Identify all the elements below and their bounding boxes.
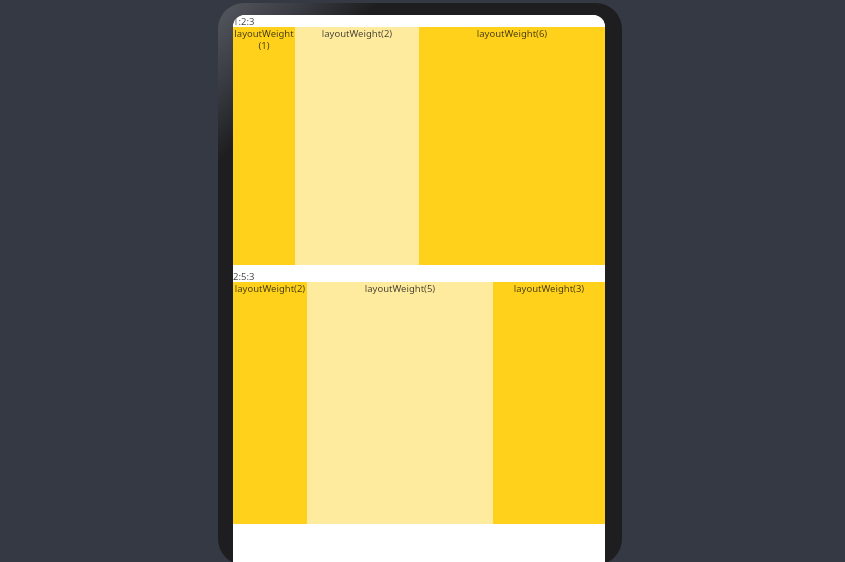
staticText: 1:2:3 — [233, 15, 255, 27]
staticText: layoutWeight(2) — [296, 27, 418, 40]
staticText: layoutWeight(6) — [420, 27, 604, 40]
button[interactable]: layoutWeight(5) — [307, 282, 493, 524]
staticText: layoutWeight(5) — [308, 282, 492, 295]
button[interactable]: layoutWeight(6) — [419, 27, 605, 265]
button[interactable]: layoutWeight(3) — [493, 282, 605, 524]
staticText: layoutWeight(1) — [234, 27, 294, 52]
button[interactable]: layoutWeight(2) — [295, 27, 419, 265]
staticText: layoutWeight(3) — [494, 282, 604, 295]
staticText: 2:5:3 — [233, 270, 255, 282]
staticText: layoutWeight(2) — [234, 282, 306, 295]
button[interactable]: layoutWeight(2) — [233, 282, 307, 524]
button[interactable]: layoutWeight(1) — [233, 27, 295, 265]
